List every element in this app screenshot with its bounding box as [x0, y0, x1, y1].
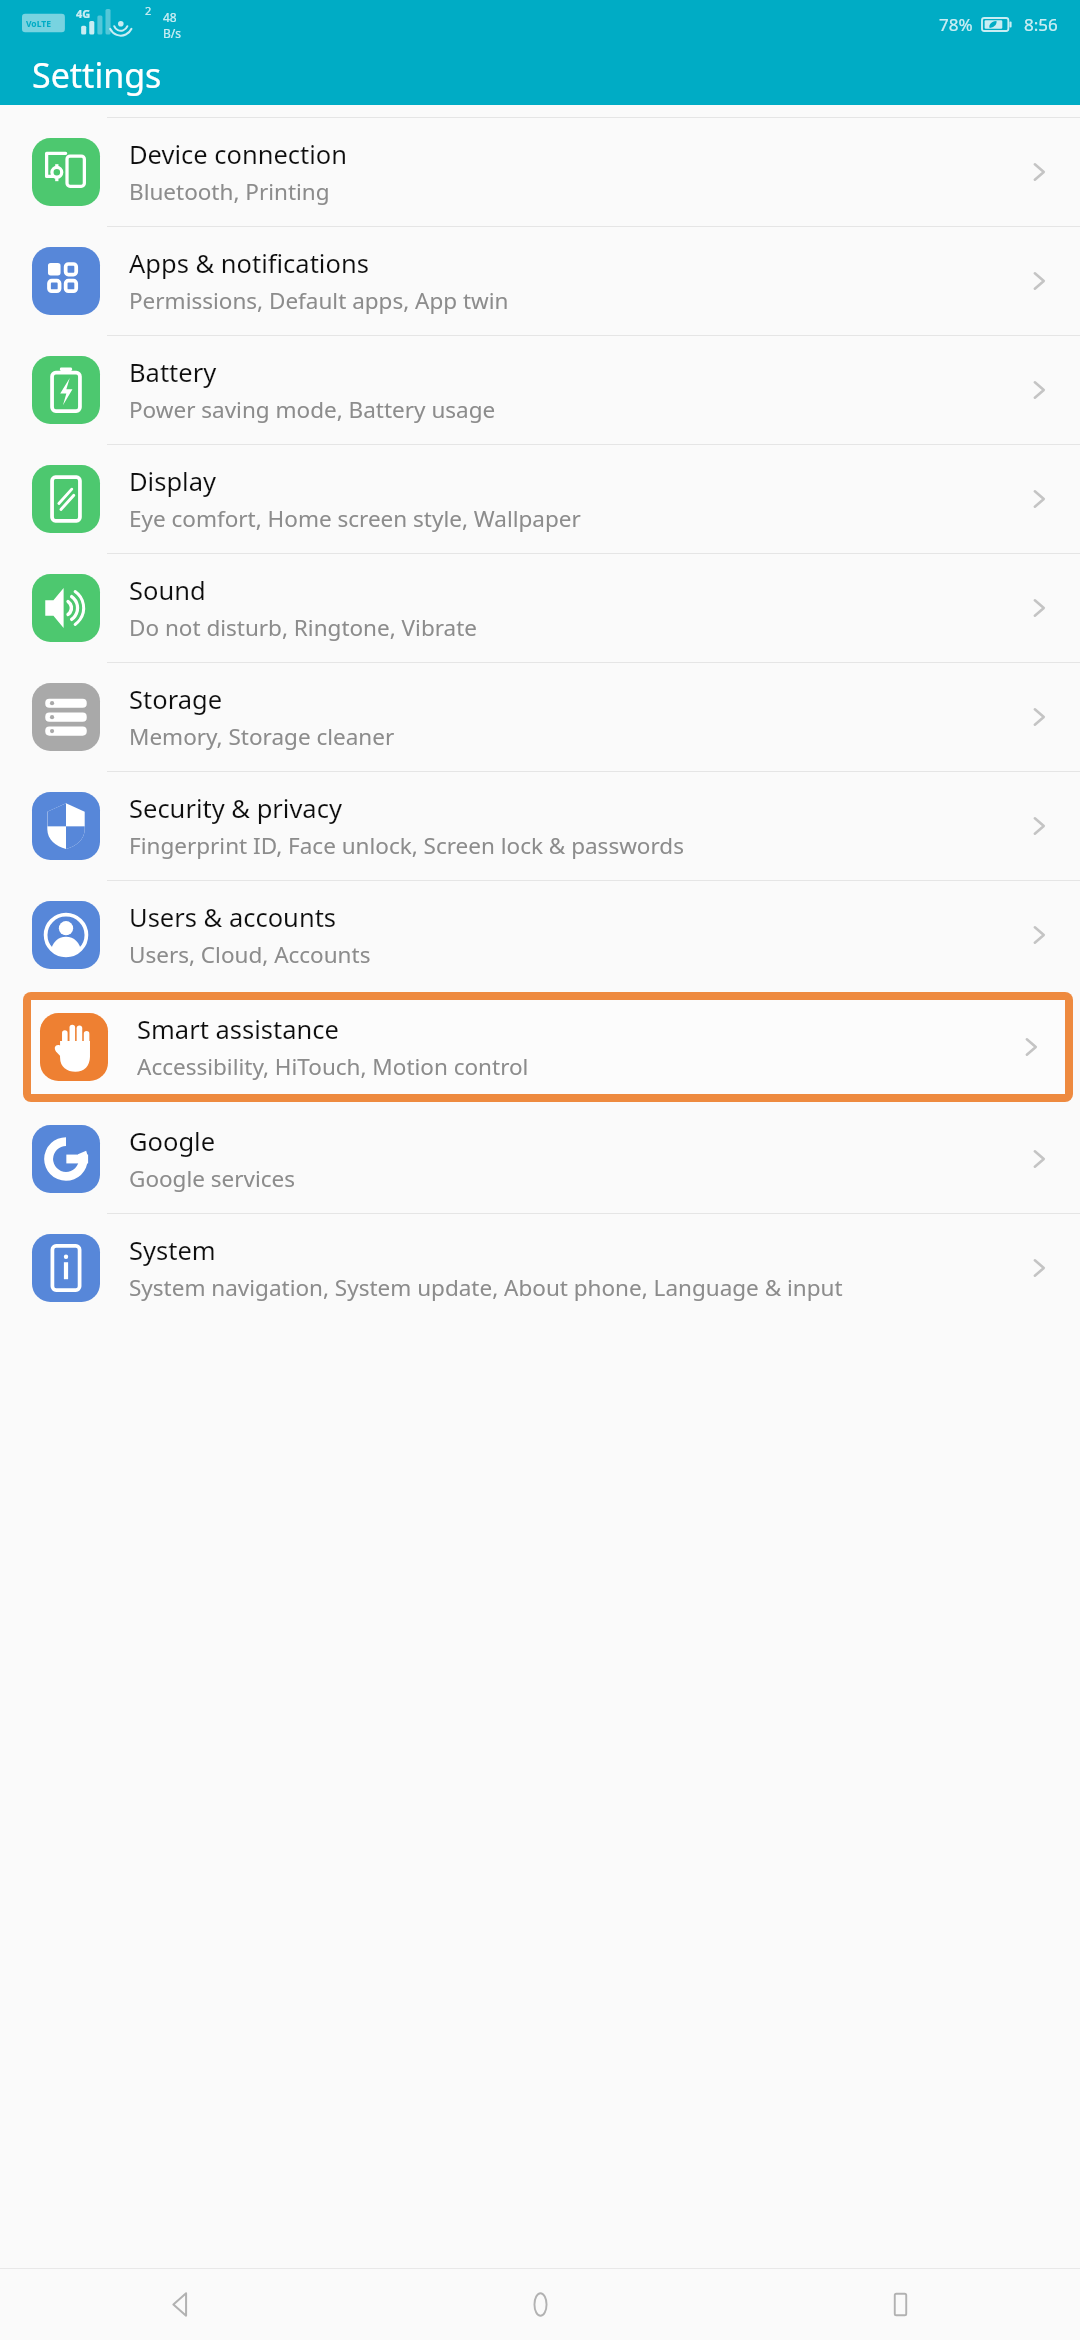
staticText: Memory, Storage cleaner — [129, 721, 395, 752]
button[interactable]: Device connection — [0, 118, 1080, 226]
button[interactable]: Back — [0, 2269, 360, 2340]
staticText: Device connection — [129, 137, 348, 172]
staticText: Bluetooth, Printing — [129, 176, 330, 207]
button[interactable]: Storage — [0, 663, 1080, 771]
staticText: Users, Cloud, Accounts — [129, 939, 371, 970]
staticText: Accessibility, HiTouch, Motion control — [137, 1051, 529, 1082]
staticText: Eye comfort, Home screen style, Wallpape… — [129, 503, 581, 534]
staticText: 8:56 — [1024, 13, 1058, 36]
staticText: 2 — [145, 3, 152, 18]
staticText: Fingerprint ID, Face unlock, Screen lock… — [129, 830, 684, 861]
button[interactable]: Security & privacy — [0, 772, 1080, 880]
staticText: VoLTE — [26, 18, 51, 30]
staticText: Google — [129, 1124, 216, 1159]
button[interactable]: Home — [360, 2269, 720, 2340]
staticText: Security & privacy — [129, 791, 342, 826]
button[interactable]: Sound — [0, 554, 1080, 662]
staticText: 4G — [76, 6, 91, 21]
button[interactable]: Recent apps — [720, 2269, 1080, 2340]
staticText: Storage — [129, 682, 223, 717]
button[interactable]: Apps & notifications — [0, 227, 1080, 335]
button[interactable]: Display — [0, 445, 1080, 553]
staticText: Apps & notifications — [129, 246, 369, 281]
button[interactable]: Smart assistance — [31, 1000, 1065, 1094]
staticText: System — [129, 1233, 216, 1268]
staticText: Google services — [129, 1163, 296, 1194]
button[interactable]: System — [0, 1214, 1080, 1322]
staticText: Users & accounts — [129, 900, 337, 935]
staticText: Battery — [129, 355, 217, 390]
staticText: Permissions, Default apps, App twin — [129, 285, 509, 316]
staticText: 48 — [163, 9, 177, 25]
staticText: Display — [129, 464, 216, 499]
staticText: Sound — [129, 573, 206, 608]
staticText: System navigation, System update, About … — [129, 1272, 843, 1303]
staticText: Power saving mode, Battery usage — [129, 394, 496, 425]
staticText: Smart assistance — [137, 1012, 339, 1047]
button[interactable]: Google — [0, 1105, 1080, 1213]
staticText: Settings — [32, 52, 162, 98]
button[interactable]: Battery — [0, 336, 1080, 444]
staticText: B/s — [163, 25, 182, 41]
staticText: 78% — [939, 13, 973, 36]
button[interactable]: Users & accounts — [0, 881, 1080, 989]
staticText: Do not disturb, Ringtone, Vibrate — [129, 612, 478, 643]
